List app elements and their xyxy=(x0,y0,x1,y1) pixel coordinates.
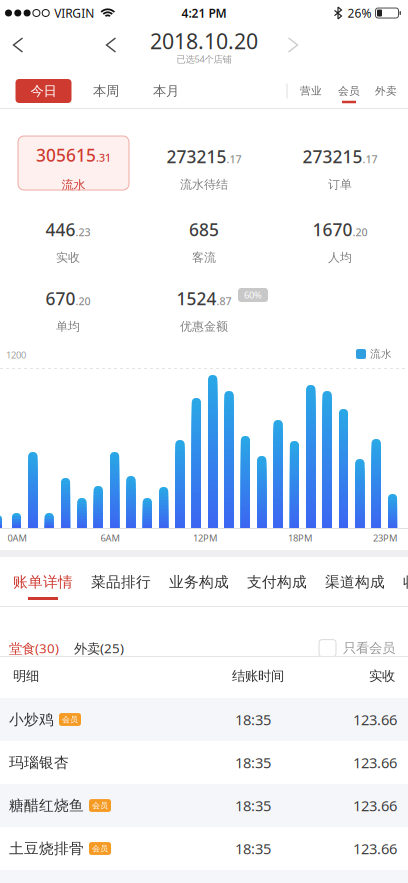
staticText: 会员 xyxy=(62,715,78,724)
staticText: 订单 xyxy=(328,177,352,192)
staticText: 本周 xyxy=(93,83,119,99)
button[interactable]: 菜品排行 xyxy=(85,558,157,606)
staticText: 结账时间 xyxy=(232,668,284,684)
staticText: 18PM xyxy=(288,532,312,544)
staticText: 流水 xyxy=(370,347,392,360)
staticText: 12PM xyxy=(193,532,217,544)
button[interactable]: 只看会员 xyxy=(319,640,408,657)
staticText: .17 xyxy=(226,152,241,166)
button[interactable]: 营业 xyxy=(291,78,331,104)
staticText: 小炒鸡 xyxy=(9,710,54,728)
staticText: 客流 xyxy=(192,250,216,265)
staticText: 实收 xyxy=(369,668,395,684)
staticText: 糖醋红烧鱼 xyxy=(9,796,84,814)
staticText: 已选54个店铺 xyxy=(176,53,231,65)
staticText: .87 xyxy=(216,294,231,308)
staticText: 会员 xyxy=(92,801,108,810)
staticText: 685 xyxy=(189,218,219,241)
staticText: 18:35 xyxy=(235,710,271,729)
staticText: 堂食(30) xyxy=(9,639,59,657)
button[interactable]: 糖醋红烧鱼 xyxy=(0,784,408,827)
button[interactable]: 收益构成 xyxy=(397,558,408,606)
staticText: 123.66 xyxy=(353,796,397,815)
button[interactable]: 土豆烧排骨 xyxy=(0,827,408,870)
staticText: .17 xyxy=(362,152,377,166)
staticText: 优惠金额 xyxy=(180,319,228,334)
staticText: 2018.10.20 xyxy=(150,27,258,55)
button[interactable]: 玛瑙银杏 xyxy=(0,741,408,784)
staticText: 今日 xyxy=(30,83,56,99)
staticText: 26% xyxy=(347,5,371,21)
staticText: 流水待结 xyxy=(180,177,228,192)
staticText: 菜品排行 xyxy=(91,573,151,591)
button[interactable]: 外卖 xyxy=(366,78,406,104)
staticText: 支付构成 xyxy=(247,573,307,591)
button[interactable]: 外卖(25) xyxy=(59,639,124,657)
staticText: 土豆烧排骨 xyxy=(9,839,84,857)
staticText: 123.66 xyxy=(353,753,397,772)
staticText: 123.66 xyxy=(353,710,397,729)
button[interactable] xyxy=(5,30,30,60)
staticText: .31 xyxy=(96,151,111,165)
button[interactable]: 会员 xyxy=(329,76,369,106)
button[interactable]: 账单详情 xyxy=(7,558,79,606)
staticText: .20 xyxy=(352,225,367,239)
staticText: 只看会员 xyxy=(343,640,395,656)
staticText: 60% xyxy=(244,289,262,301)
staticText: 单均 xyxy=(56,319,80,334)
button[interactable]: 渠道构成 xyxy=(319,558,391,606)
button[interactable]: 305615 xyxy=(12,141,123,195)
staticText: 123.66 xyxy=(353,839,397,858)
staticText: 收益构成 xyxy=(403,573,408,591)
staticText: 实收 xyxy=(56,250,80,265)
staticText: 会员 xyxy=(92,844,108,853)
staticText: VIRGIN xyxy=(54,5,94,21)
button[interactable] xyxy=(98,30,123,60)
staticText: 1524 xyxy=(176,287,216,310)
staticText: 人均 xyxy=(328,250,352,265)
staticText: 流水 xyxy=(61,178,85,192)
staticText: 本月 xyxy=(153,83,179,99)
staticText: .23 xyxy=(75,225,90,239)
staticText: 营业 xyxy=(300,84,322,97)
staticText: 明细 xyxy=(13,668,39,684)
button[interactable]: 支付构成 xyxy=(241,558,313,606)
staticText: 23PM xyxy=(373,532,397,544)
staticText: 446 xyxy=(45,218,75,241)
staticText: 273215 xyxy=(302,145,362,168)
button[interactable]: 本周 xyxy=(81,78,131,104)
staticText: 玛瑙银杏 xyxy=(9,753,69,771)
button[interactable]: 小炒鸡 xyxy=(0,698,408,741)
staticText: 18:35 xyxy=(235,753,271,772)
staticText: 1670 xyxy=(312,218,352,241)
button[interactable]: 堂食(30) xyxy=(0,639,59,657)
staticText: 305615 xyxy=(36,144,96,167)
staticText: 6AM xyxy=(100,532,119,544)
staticText: 1200 xyxy=(6,349,26,361)
staticText: 会员 xyxy=(338,84,360,97)
staticText: 273215 xyxy=(166,145,226,168)
staticText: 0AM xyxy=(7,532,26,544)
staticText: 4:21 PM xyxy=(181,5,226,21)
staticText: 业务构成 xyxy=(169,573,229,591)
staticText: 外卖 xyxy=(375,84,397,97)
staticText: 账单详情 xyxy=(13,573,73,591)
staticText: 18:35 xyxy=(235,796,271,815)
staticText: .20 xyxy=(75,294,90,308)
button[interactable] xyxy=(280,30,305,60)
staticText: 外卖(25) xyxy=(74,639,124,657)
button[interactable]: 本月 xyxy=(141,78,191,104)
staticText: 670 xyxy=(45,287,75,310)
staticText: 18:35 xyxy=(235,839,271,858)
staticText: 渠道构成 xyxy=(325,573,385,591)
button[interactable]: 业务构成 xyxy=(163,558,235,606)
button[interactable]: 今日 xyxy=(15,79,71,103)
